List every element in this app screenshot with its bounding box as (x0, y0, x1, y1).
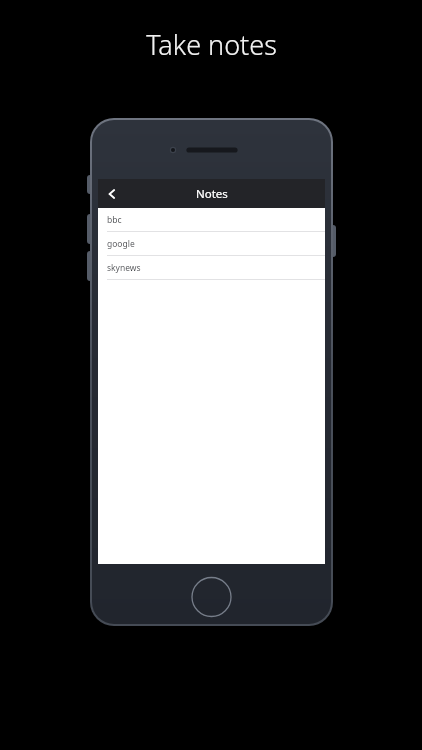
staticText: Notes (196, 186, 228, 202)
button[interactable]: Home (90, 577, 333, 621)
button[interactable]: bbc (98, 208, 325, 232)
staticText: Take notes (146, 26, 277, 63)
staticText: bbc (107, 214, 122, 226)
staticText: skynews (107, 262, 141, 274)
button[interactable]: google (98, 232, 325, 256)
staticText: google (107, 238, 135, 250)
button[interactable]: skynews (98, 256, 325, 280)
button[interactable]: Back (98, 179, 126, 208)
